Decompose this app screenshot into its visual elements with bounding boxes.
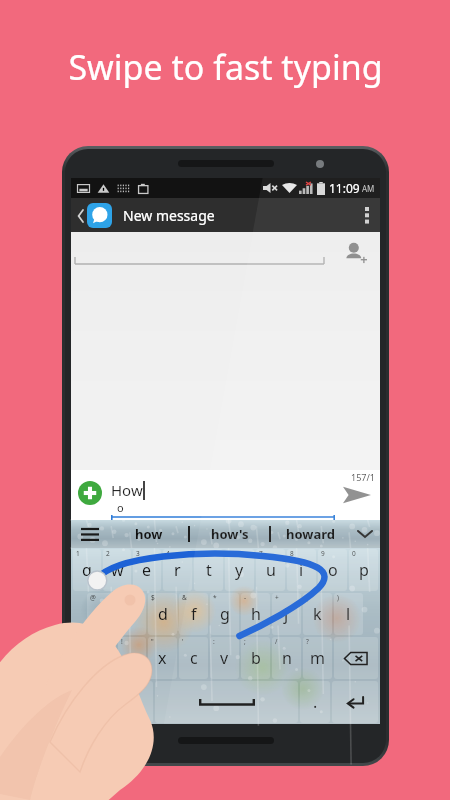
button[interactable]: 8 [287,549,316,591]
button[interactable]: 5 [194,549,223,591]
button[interactable]: 3 [133,549,161,591]
staticText: x [158,647,167,669]
staticText: 7 [259,549,263,558]
staticText: * [213,593,217,602]
staticText: v [220,647,229,669]
staticText: d [158,603,168,625]
staticText: " [151,637,154,646]
button[interactable]: 9 [318,549,347,591]
staticText: ; [244,637,246,646]
staticText: 1 [76,549,80,558]
button[interactable]: Send [341,482,373,508]
staticText: & [182,593,187,602]
button[interactable]: # [117,593,146,635]
staticText: m [310,647,325,669]
staticText: - [244,593,247,602]
staticText: . [313,691,318,713]
button[interactable]: : [210,637,239,679]
button[interactable]: 0 [349,549,378,591]
staticText: : [213,637,215,646]
button[interactable]: space [155,681,298,723]
button[interactable]: Keyboard menu [71,520,109,548]
button[interactable]: / [272,637,301,679]
staticText: i [299,559,304,581]
staticText: g [220,603,230,625]
staticText: 157/1 [351,471,375,483]
staticText: u [266,559,276,581]
button[interactable]: ? [303,637,332,679]
button[interactable]: $ [148,593,177,635]
staticText: 4 [166,549,170,558]
staticText: z [128,647,136,669]
button[interactable]: " [148,637,177,679]
staticText: n [282,647,292,669]
staticText: Swipe to fast typing [68,44,383,90]
button[interactable]: , [122,681,153,723]
staticText: q [82,559,92,581]
button[interactable]: ! [118,637,146,679]
staticText: a [97,603,106,625]
button[interactable]: @ [87,593,115,635]
staticText: AM [362,183,375,194]
staticText: s [128,603,136,625]
button[interactable]: & [179,593,208,635]
button[interactable]: ' [179,637,208,679]
button[interactable]: ( [303,593,332,635]
staticText: 6 [228,549,232,558]
button[interactable]: . [300,681,330,723]
staticText: ! [121,637,123,646]
staticText: f [191,603,197,625]
staticText: / [275,637,278,646]
staticText: 5 [197,549,201,558]
staticText: , [135,691,140,713]
button[interactable]: 6 [225,549,254,591]
button[interactable]: More options [354,198,380,232]
button[interactable]: ; [241,637,270,679]
staticText: y [235,559,244,581]
staticText: h [251,603,261,625]
staticText: 2 [106,549,110,558]
button[interactable]: howard [271,520,350,548]
button[interactable]: how [109,520,188,548]
staticText: b [251,647,261,669]
button[interactable]: Add contact [338,236,372,270]
button[interactable]: how's [190,520,269,548]
button[interactable]: Expand suggestions [350,520,380,548]
button[interactable]: 7 [256,549,285,591]
staticText: 8 [290,549,294,558]
staticText: j [284,603,289,625]
staticText: ' [182,637,184,646]
button[interactable]: enter [332,681,378,723]
button[interactable]: ) [334,593,363,635]
staticText: o [117,500,124,515]
button[interactable]: 2 [103,549,131,591]
staticText: how [135,525,163,543]
staticText: howard [286,525,335,543]
staticText: 9 [321,549,325,558]
button[interactable]: + [272,593,301,635]
button[interactable]: del [334,637,378,679]
button[interactable]: Add attachment [77,480,103,506]
staticText: l [346,603,351,625]
staticText: o [328,559,338,581]
staticText: ) [337,593,339,602]
staticText: how's [211,525,249,543]
button[interactable]: 4 [163,549,192,591]
staticText: k [313,603,322,625]
button[interactable]: Back [75,203,114,228]
staticText: @ [90,593,96,602]
button[interactable]: - [241,593,270,635]
staticText: + [275,593,279,602]
button[interactable]: * [210,593,239,635]
staticText: New message [123,206,215,225]
staticText: ? [306,637,309,646]
staticText: r [174,559,181,581]
button[interactable]: 1 [73,549,101,591]
staticText: ( [306,593,308,602]
staticText: c [190,647,198,669]
staticText: w [111,559,124,581]
